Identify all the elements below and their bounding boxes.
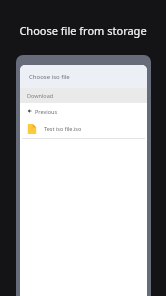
button[interactable]: Test iso file.iso <box>20 119 147 138</box>
button[interactable]: Choose iso file <box>20 65 147 88</box>
staticText: Download <box>27 92 54 99</box>
button[interactable]: Previous folder <box>20 103 147 119</box>
staticText: Choose file from storage <box>19 23 147 38</box>
other: Previous folder <box>26 108 32 114</box>
staticText: Choose iso file <box>29 73 70 81</box>
staticText: Previous <box>35 108 58 115</box>
staticText: Test iso file.iso <box>44 125 82 132</box>
